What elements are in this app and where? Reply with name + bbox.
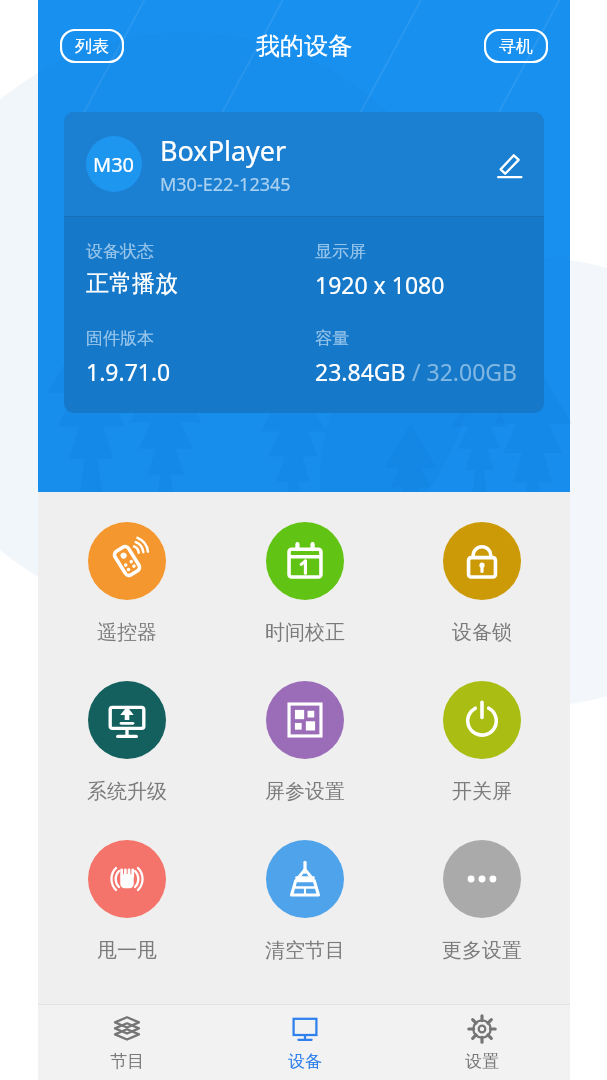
- staticText: 容量: [315, 328, 349, 349]
- button[interactable]: M30: [64, 112, 544, 413]
- button[interactable]: 列表: [60, 29, 124, 63]
- button[interactable]: 更多设置: [393, 836, 570, 967]
- button[interactable]: 时间校正: [216, 518, 393, 649]
- staticText: 我的设备: [256, 31, 352, 61]
- button[interactable]: 设备锁: [393, 518, 570, 649]
- staticText: 寻机: [499, 36, 533, 57]
- staticText: M30: [93, 151, 135, 178]
- staticText: 系统升级: [87, 779, 167, 804]
- staticText: 设备状态: [86, 241, 154, 262]
- button[interactable]: Edit device name: [482, 137, 536, 191]
- staticText: 甩一甩: [97, 938, 157, 963]
- button[interactable]: 屏参设置: [216, 677, 393, 808]
- staticText: 清空节目: [265, 938, 345, 963]
- staticText: 节目: [110, 1051, 144, 1072]
- staticText: 1920 x 1080: [315, 269, 445, 300]
- staticText: 23.84GB: [315, 356, 406, 387]
- staticText: 屏参设置: [265, 779, 345, 804]
- staticText: 设置: [465, 1051, 499, 1072]
- button[interactable]: 系统升级: [38, 677, 216, 808]
- staticText: 固件版本: [86, 328, 154, 349]
- staticText: 正常播放: [86, 269, 178, 298]
- button[interactable]: 遥控器: [38, 518, 216, 649]
- staticText: / 32.00GB: [406, 356, 517, 387]
- button[interactable]: 寻机: [484, 29, 548, 63]
- button[interactable]: 设置: [393, 1005, 570, 1080]
- button[interactable]: 设备: [216, 1005, 393, 1080]
- button[interactable]: 甩一甩: [38, 836, 216, 967]
- button[interactable]: 节目: [38, 1005, 216, 1080]
- button[interactable]: 开关屏: [393, 677, 570, 808]
- staticText: BoxPlayer: [160, 132, 287, 169]
- staticText: 时间校正: [265, 620, 345, 645]
- button[interactable]: 清空节目: [216, 836, 393, 967]
- staticText: M30-E22-12345: [160, 172, 291, 197]
- staticText: 列表: [75, 36, 109, 57]
- staticText: 更多设置: [442, 938, 522, 963]
- staticText: 设备: [288, 1051, 322, 1072]
- staticText: 遥控器: [97, 620, 157, 645]
- staticText: 设备锁: [452, 620, 512, 645]
- staticText: 开关屏: [452, 779, 512, 804]
- staticText: 显示屏: [315, 241, 366, 262]
- staticText: 1.9.71.0: [86, 356, 171, 387]
